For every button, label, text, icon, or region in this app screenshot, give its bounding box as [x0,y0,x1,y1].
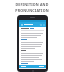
staticText: PRONUNCIATION [15,8,49,13]
button[interactable]: Navigate up [19,22,46,27]
button[interactable] [21,28,44,29]
button[interactable]: Navigate up [20,23,23,26]
staticText: DEFINITION AND [15,2,49,7]
button[interactable] [19,65,46,68]
